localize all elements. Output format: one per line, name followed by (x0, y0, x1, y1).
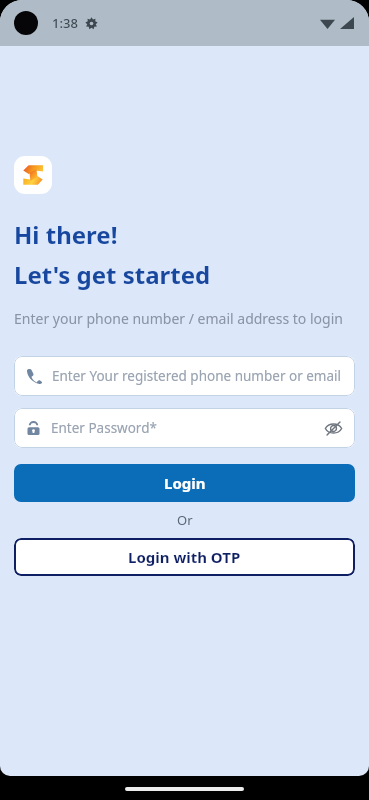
staticText: Enter Your registered phone number or em… (52, 367, 341, 385)
other: Password (26, 421, 41, 436)
staticText: Enter Password* (51, 419, 157, 437)
staticText: Hi there! (14, 218, 118, 251)
staticText: Let's get started (14, 258, 211, 291)
staticText: Enter your phone number / email address … (14, 309, 355, 328)
other: App logo (14, 156, 52, 194)
staticText: Login with OTP (128, 547, 241, 567)
staticText: Login (164, 473, 206, 493)
staticText: 1:38 (52, 14, 78, 32)
other: Show password (324, 419, 343, 438)
button[interactable]: Login with OTP (14, 538, 355, 576)
staticText: Or (177, 511, 193, 529)
other: Phone (26, 368, 42, 384)
button[interactable]: Login (14, 464, 355, 502)
button[interactable]: Phone (14, 356, 355, 396)
button[interactable]: Password (14, 408, 355, 448)
